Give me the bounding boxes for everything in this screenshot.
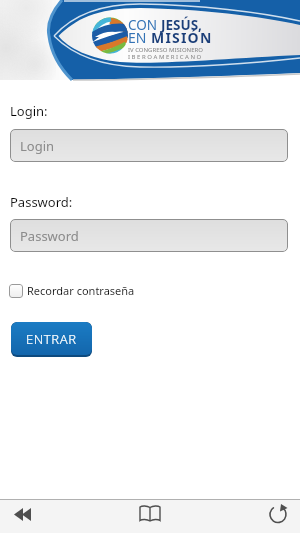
staticText: Login <box>20 137 55 155</box>
button[interactable]: ENTRAR <box>11 322 92 357</box>
button[interactable]: Login <box>10 129 288 162</box>
button[interactable]: Recordar contraseña <box>9 283 135 298</box>
staticText: EN <box>128 28 151 47</box>
button[interactable] <box>132 503 168 529</box>
staticText: Login: <box>10 102 48 120</box>
staticText: Password: <box>10 193 73 211</box>
staticText: CON <box>128 16 161 34</box>
button[interactable]: Password <box>10 219 288 252</box>
staticText: MISIÓN <box>151 28 213 47</box>
staticText: Recordar contraseña <box>27 283 135 298</box>
staticText: JESÚS, <box>161 16 202 34</box>
staticText: Password <box>20 227 79 245</box>
button[interactable] <box>6 503 42 529</box>
button[interactable] <box>260 503 296 529</box>
staticText: IV CONGRESO MISIONERO <box>128 46 203 54</box>
staticText: ENTRAR <box>26 330 77 348</box>
staticText: I B E R O A M E R I C A N O <box>128 53 202 61</box>
